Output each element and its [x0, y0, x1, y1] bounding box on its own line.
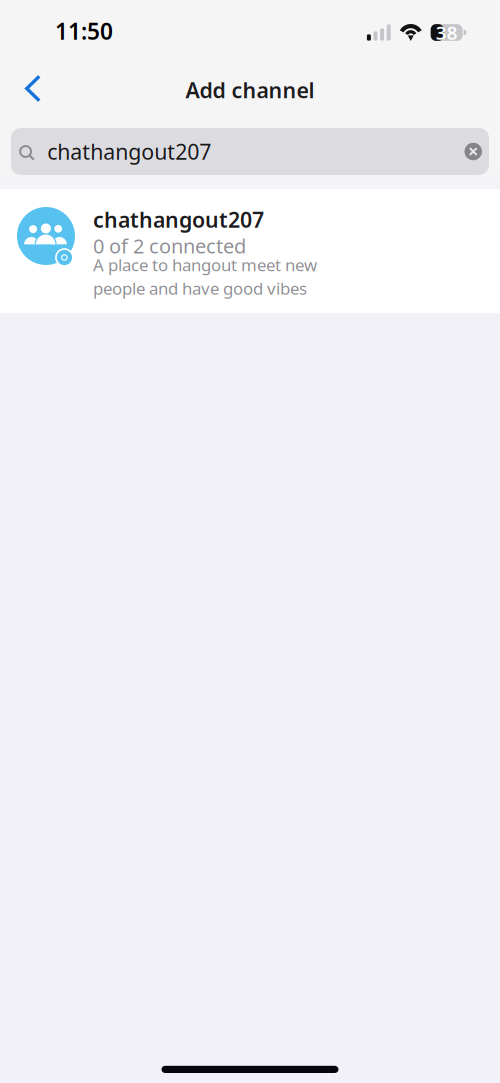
staticText: 0 of 2 connected: [93, 232, 246, 259]
button[interactable]: Back: [0, 66, 57, 114]
button[interactable]: Clear text: [456, 138, 482, 165]
staticText: chathangout207: [93, 205, 264, 234]
staticText: Add channel: [185, 75, 314, 105]
staticText: 11:50: [55, 16, 113, 46]
staticText: A place to hangout meet new people and h…: [93, 253, 317, 300]
staticText: 38: [436, 20, 458, 45]
button[interactable]: chathangout207: [0, 189, 500, 313]
staticText: chathangout207: [47, 137, 211, 166]
